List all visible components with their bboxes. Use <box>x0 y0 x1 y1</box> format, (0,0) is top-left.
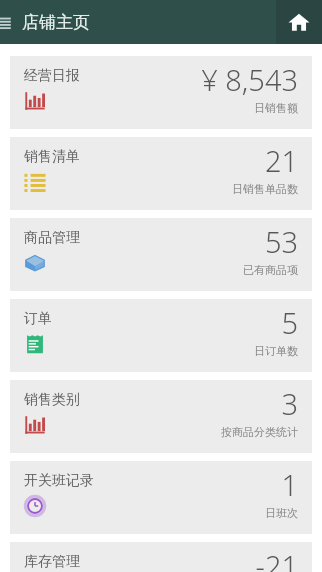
staticText: 日销售额 <box>254 101 298 115</box>
button[interactable]: 经营日报 <box>10 56 312 129</box>
staticText: 5 <box>281 303 298 342</box>
button[interactable]: Menu <box>0 0 26 44</box>
button[interactable]: 销售清单 <box>10 137 312 210</box>
staticText: 3 <box>281 384 298 423</box>
button[interactable]: 开关班记录 <box>10 461 312 534</box>
button[interactable]: 订单 <box>10 299 312 372</box>
button[interactable]: 库存管理 <box>10 542 312 572</box>
staticText: 经营日报 <box>24 67 80 85</box>
staticText: 订单 <box>24 310 52 328</box>
staticText: 日班次 <box>265 506 298 520</box>
staticText: 按商品分类统计 <box>221 425 298 439</box>
staticText: 53 <box>264 222 298 261</box>
staticText: 商品管理 <box>24 229 80 247</box>
staticText: ¥ 8,543 <box>201 60 298 99</box>
staticText: 已有商品项 <box>243 263 298 277</box>
button[interactable]: 商品管理 <box>10 218 312 291</box>
staticText: 销售类别 <box>24 391 80 409</box>
staticText: 销售清单 <box>24 148 80 166</box>
staticText: 日销售单品数 <box>232 182 298 196</box>
staticText: 开关班记录 <box>24 472 94 490</box>
staticText: 日订单数 <box>254 344 298 358</box>
staticText: 店铺主页 <box>22 12 90 33</box>
staticText: -21 <box>255 546 298 572</box>
staticText: 21 <box>264 141 298 180</box>
button[interactable]: 销售类别 <box>10 380 312 453</box>
button[interactable]: Home <box>276 0 322 44</box>
staticText: 库存管理 <box>24 553 80 571</box>
staticText: 1 <box>281 465 298 504</box>
